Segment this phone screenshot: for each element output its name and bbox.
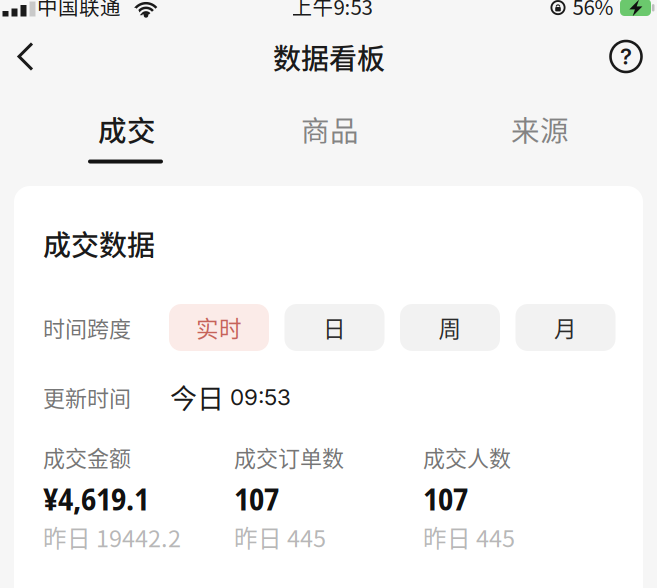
- staticText: 来源: [511, 108, 569, 150]
- staticText: 周: [438, 311, 461, 344]
- staticText: 成交人数: [423, 441, 511, 473]
- staticText: 月: [554, 311, 577, 344]
- staticText: 昨日 445: [234, 520, 326, 554]
- staticText: 中国联通: [37, 0, 121, 21]
- button[interactable]: 月: [515, 304, 615, 351]
- staticText: 成交: [98, 108, 156, 150]
- staticText: 成交数据: [43, 223, 155, 264]
- staticText: 更新时间: [43, 381, 131, 413]
- staticText: 成交订单数: [234, 441, 344, 473]
- button[interactable]: 实时: [169, 304, 269, 351]
- staticText: 商品: [301, 108, 359, 150]
- staticText: 上午9:53: [291, 0, 372, 21]
- staticText: 日: [323, 311, 346, 344]
- staticText: 实时: [196, 311, 242, 344]
- staticText: 时间跨度: [43, 312, 131, 343]
- staticText: 107: [423, 477, 468, 520]
- button[interactable]: 来源: [480, 102, 600, 156]
- staticText: ?: [620, 43, 632, 70]
- staticText: 107: [234, 477, 279, 520]
- staticText: 数据看板: [273, 37, 385, 77]
- button[interactable]: 日: [284, 304, 384, 351]
- staticText: ¥4,619.1: [43, 477, 149, 520]
- staticText: 成交金额: [43, 441, 131, 473]
- button[interactable]: Help: [606, 36, 646, 76]
- staticText: 昨日 445: [423, 520, 515, 554]
- staticText: 56%: [572, 0, 613, 21]
- button[interactable]: 成交: [67, 102, 187, 156]
- button[interactable]: 商品: [270, 102, 390, 156]
- staticText: 今日: [170, 377, 224, 417]
- button[interactable]: Back: [3, 34, 47, 79]
- staticText: 09:53: [224, 383, 291, 411]
- staticText: 昨日 19442.2: [43, 520, 181, 554]
- button[interactable]: 周: [400, 304, 500, 351]
